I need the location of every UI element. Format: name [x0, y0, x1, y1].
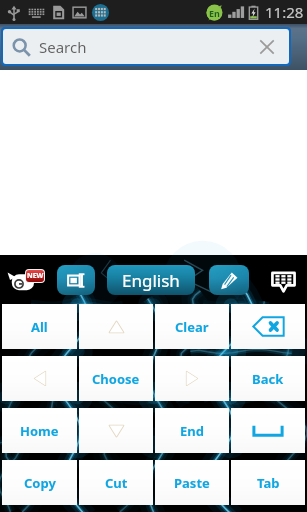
staticText: Home	[20, 422, 59, 440]
button[interactable]: Paste	[155, 460, 229, 505]
button[interactable]: Back	[231, 356, 305, 401]
button[interactable]: End	[155, 408, 229, 453]
staticText: English	[122, 269, 180, 292]
button[interactable]: Clear	[155, 304, 229, 349]
button[interactable]: space	[231, 408, 305, 453]
staticText: End	[180, 422, 204, 440]
button[interactable]: Cut	[79, 460, 153, 505]
staticText: Paste	[174, 474, 210, 492]
button[interactable]: Change theme	[57, 265, 95, 295]
staticText: Copy	[24, 474, 56, 492]
button[interactable]: Copy	[2, 460, 77, 505]
staticText: En	[209, 7, 220, 19]
staticText: NEW	[27, 271, 44, 281]
button[interactable]: backspace	[231, 304, 305, 349]
button[interactable]: Clear search	[255, 35, 279, 59]
staticText: Choose	[92, 370, 140, 388]
staticText: Cut	[105, 474, 128, 492]
button[interactable]: Handwriting	[209, 265, 249, 295]
staticText: 11:28	[265, 2, 304, 22]
staticText: Clear	[175, 318, 209, 336]
button[interactable]: right	[155, 356, 229, 401]
button[interactable]: What's new	[4, 263, 50, 297]
button[interactable]: Tab	[231, 460, 305, 505]
button[interactable]: English	[107, 265, 195, 295]
button[interactable]: down	[79, 408, 153, 453]
button[interactable]: Home	[2, 408, 77, 453]
button[interactable]: Search	[3, 29, 289, 64]
button[interactable]: Choose	[79, 356, 153, 401]
button[interactable]: All	[2, 304, 77, 349]
button[interactable]: Hide keyboard	[268, 265, 298, 295]
staticText: Back	[252, 370, 284, 388]
staticText: Search	[39, 37, 87, 57]
staticText: Tab	[257, 474, 280, 492]
staticText: All	[31, 318, 48, 336]
button[interactable]: up	[79, 304, 153, 349]
button[interactable]: left	[2, 356, 77, 401]
